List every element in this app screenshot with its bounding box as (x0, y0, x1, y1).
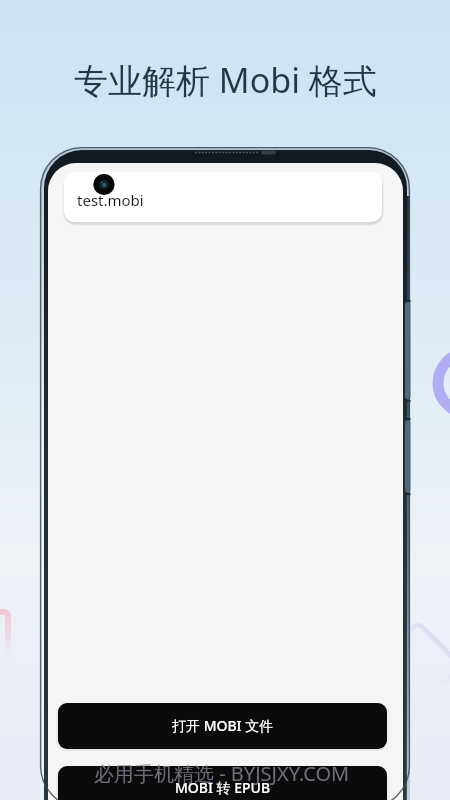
staticText: 打开 MOBI 文件 (172, 716, 274, 735)
button[interactable]: MOBI 转 EPUB (58, 766, 387, 800)
staticText: 专业解析 Mobi 格式 (74, 57, 377, 103)
staticText: MOBI 转 EPUB (175, 778, 271, 797)
staticText: 必用手机精选 - BYJSJXY.COM (94, 760, 350, 787)
button[interactable]: test.mobi (64, 172, 382, 222)
staticText: test.mobi (77, 190, 144, 210)
button[interactable]: 打开 MOBI 文件 (58, 703, 387, 749)
